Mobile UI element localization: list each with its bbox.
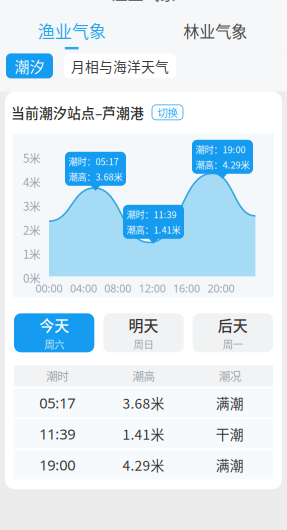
staticText: 今天 — [39, 314, 69, 336]
staticText: 12:00 — [139, 281, 166, 295]
staticText: 月相与海洋天气 — [71, 56, 169, 76]
staticText: 切换 — [157, 105, 177, 120]
staticText: 05:17 — [39, 393, 75, 413]
staticText: 周日 — [133, 337, 153, 352]
staticText: 潮时：05:17 — [68, 154, 118, 168]
staticText: 渔业气象 — [111, 0, 175, 5]
staticText: 20:00 — [207, 281, 234, 295]
staticText: 00:00 — [35, 281, 62, 295]
staticText: 潮高：4.29米 — [195, 158, 249, 171]
staticText: 周六 — [44, 337, 64, 352]
button[interactable]: 渔业气象 — [0, 18, 143, 49]
staticText: 11:39 — [39, 424, 75, 444]
staticText: 5米 — [23, 149, 40, 166]
staticText: 1米 — [23, 245, 40, 262]
button[interactable]: 月相与海洋天气 — [64, 53, 176, 78]
staticText: 3米 — [23, 197, 40, 214]
staticText: 1.41米 — [122, 424, 164, 444]
staticText: 19:00 — [39, 455, 75, 475]
staticText: 2米 — [23, 221, 40, 238]
button[interactable]: 林业气象 — [143, 19, 287, 48]
staticText: 0米 — [23, 269, 40, 286]
staticText: 潮时：11:39 — [126, 207, 176, 221]
button[interactable]: 明天 — [103, 313, 184, 352]
staticText: 潮汐 — [14, 55, 44, 77]
staticText: 林业气象 — [183, 19, 247, 42]
staticText: 满潮 — [216, 393, 244, 413]
staticText: 潮高：1.41米 — [126, 223, 180, 236]
button[interactable]: 潮汐 — [6, 53, 53, 78]
staticText: 潮高：3.68米 — [68, 170, 122, 183]
staticText: 4.29米 — [122, 455, 164, 475]
staticText: 04:00 — [70, 281, 97, 295]
staticText: 周一 — [223, 337, 243, 352]
staticText: 潮况 — [219, 367, 241, 384]
staticText: 干潮 — [216, 424, 244, 444]
staticText: 3.68米 — [122, 393, 164, 413]
staticText: 后天 — [218, 314, 248, 336]
staticText: 16:00 — [173, 281, 200, 295]
staticText: 潮高 — [132, 367, 154, 384]
button[interactable]: 今天 — [14, 313, 94, 352]
staticText: 潮时 — [46, 367, 68, 384]
staticText: 满潮 — [216, 455, 244, 475]
staticText: 当前潮汐站点–芦潮港 — [11, 102, 144, 122]
button[interactable]: 后天 — [193, 313, 273, 352]
staticText: 4米 — [23, 173, 40, 190]
staticText: 渔业气象 — [38, 18, 106, 43]
button[interactable]: 切换 — [152, 105, 183, 120]
staticText: 明天 — [128, 314, 158, 336]
staticText: 08:00 — [104, 281, 131, 295]
staticText: 潮时：19:00 — [195, 142, 245, 156]
